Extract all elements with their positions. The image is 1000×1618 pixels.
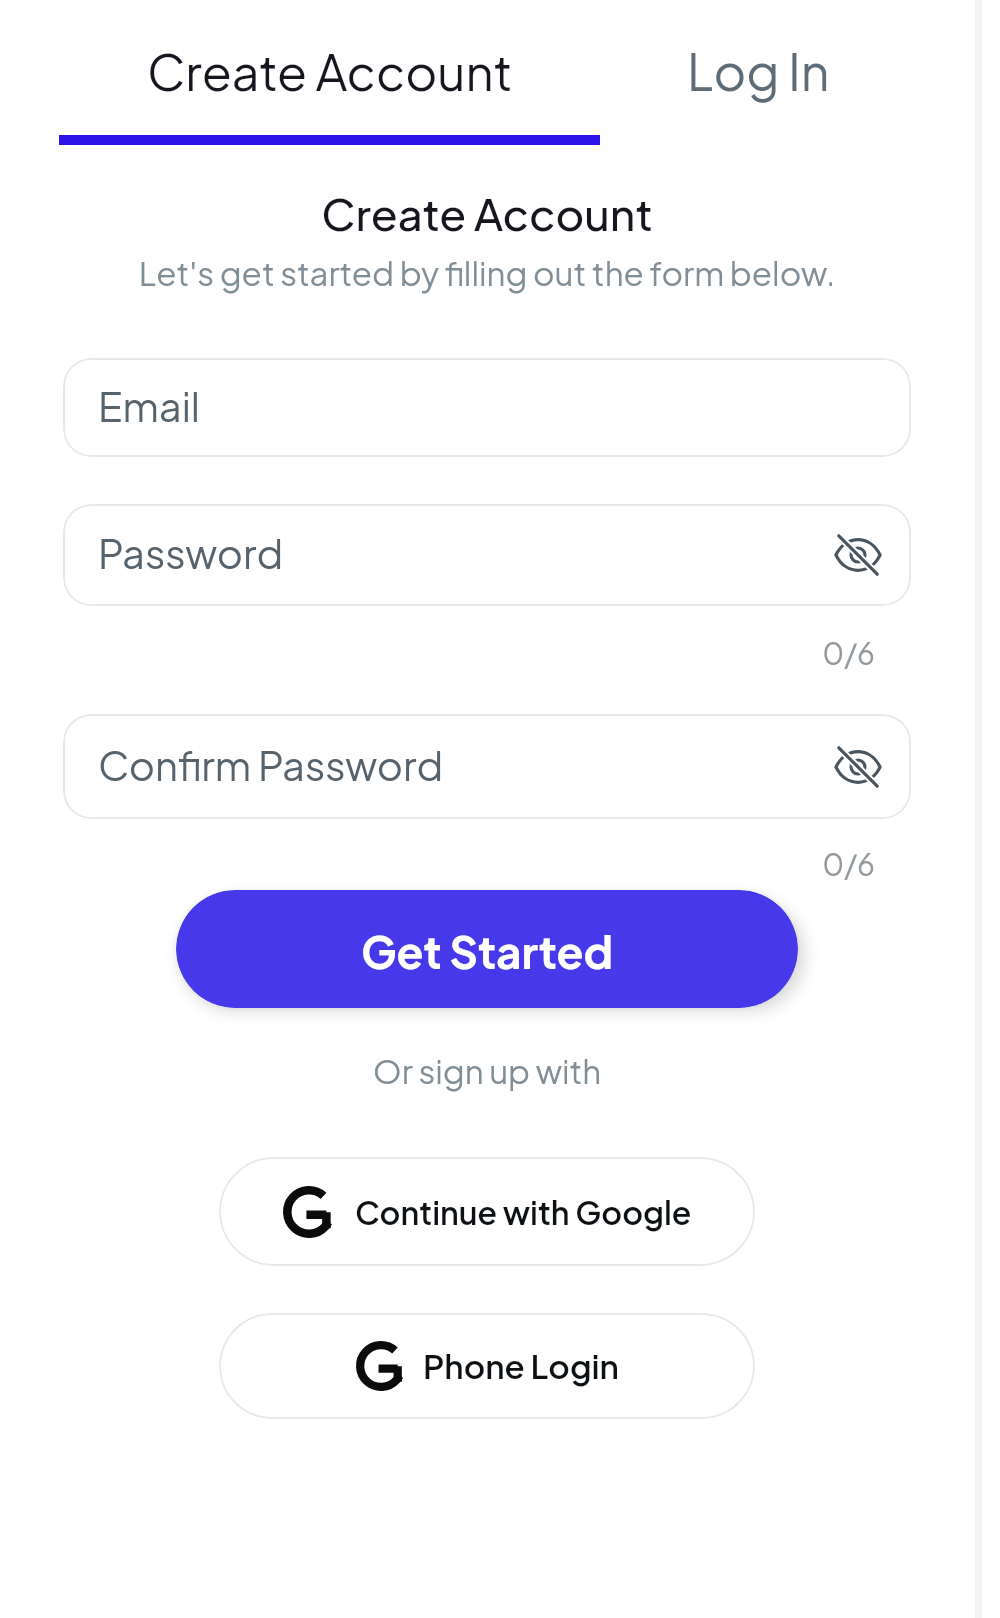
staticText: Create Account [0, 185, 974, 240]
other: Toggle password visibility [834, 531, 882, 579]
button[interactable]: Get Started [176, 890, 798, 1008]
staticText: Phone Login [423, 1345, 619, 1387]
button[interactable]: Continue with Google [219, 1157, 755, 1266]
button[interactable]: Log In [600, 0, 916, 145]
staticText: Get Started [361, 923, 614, 978]
staticText: 0/6 [63, 845, 875, 883]
staticText: Password [98, 527, 284, 577]
staticText: 0/6 [63, 634, 875, 672]
staticText: Let's get started by filling out the for… [0, 252, 974, 294]
button[interactable]: Phone Login [219, 1313, 755, 1419]
other: Toggle password visibility [834, 743, 882, 791]
button[interactable]: Password [63, 504, 911, 606]
staticText: Log In [687, 39, 830, 102]
staticText: Create Account [147, 40, 513, 102]
staticText: Confirm Password [98, 739, 444, 789]
staticText: Continue with Google [355, 1192, 692, 1232]
button[interactable]: Confirm Password [63, 714, 911, 819]
staticText: Or sign up with [0, 1050, 974, 1092]
button[interactable]: Email [63, 358, 911, 457]
button[interactable]: Create Account [59, 0, 600, 145]
staticText: Email [98, 380, 200, 430]
